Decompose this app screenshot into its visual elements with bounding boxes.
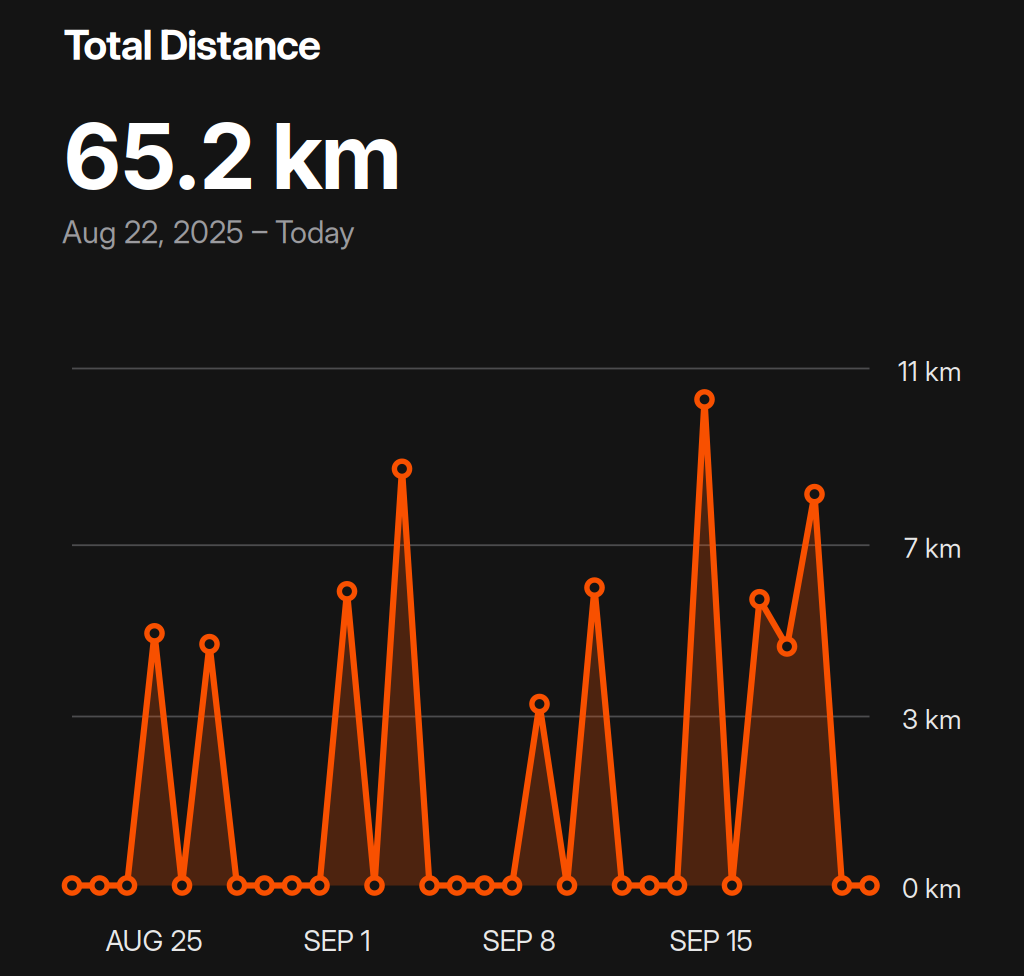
staticText: 7 km [904,532,961,564]
staticText: SEP 8 [482,923,555,958]
staticText: 3 km [902,703,961,735]
staticText: SEP 1 [303,923,370,958]
staticText: Total Distance [63,20,321,70]
staticText: 0 km [902,872,961,904]
staticText: 11 km [898,355,961,387]
staticText: Aug 22, 2025 – Today [62,214,355,251]
staticText: AUG 25 [105,923,202,958]
staticText: 65.2 km [63,101,402,211]
staticText: SEP 15 [669,923,752,958]
